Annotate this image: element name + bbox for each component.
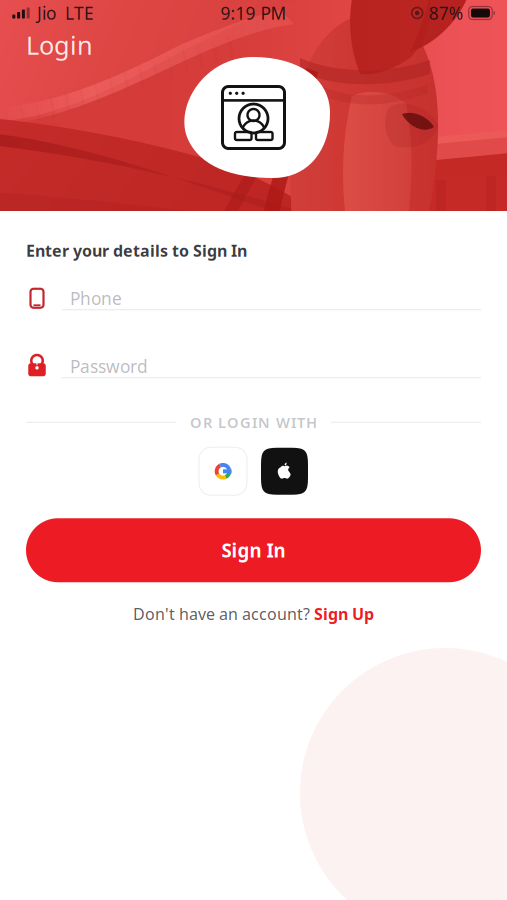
staticText: Password — [70, 355, 148, 378]
staticText: OR LOGIN WITH — [190, 412, 317, 432]
staticText: Login — [26, 28, 93, 62]
staticText: Sign Up — [314, 603, 374, 624]
button[interactable]: Sign in with Apple — [261, 448, 308, 495]
staticText: Don't have an account? — [133, 603, 314, 624]
staticText: Phone — [70, 287, 122, 310]
staticText: Enter your details to Sign In — [26, 240, 247, 261]
staticText: LTE — [65, 1, 94, 24]
staticText: 9:19 PM — [220, 1, 286, 24]
staticText: Jio — [37, 1, 56, 24]
staticText: 87% — [429, 1, 463, 24]
staticText: Sign In — [221, 538, 285, 563]
button[interactable]: Sign Up — [314, 603, 374, 624]
button[interactable]: Sign in with Google — [199, 447, 247, 495]
button[interactable]: Sign In — [26, 518, 481, 582]
